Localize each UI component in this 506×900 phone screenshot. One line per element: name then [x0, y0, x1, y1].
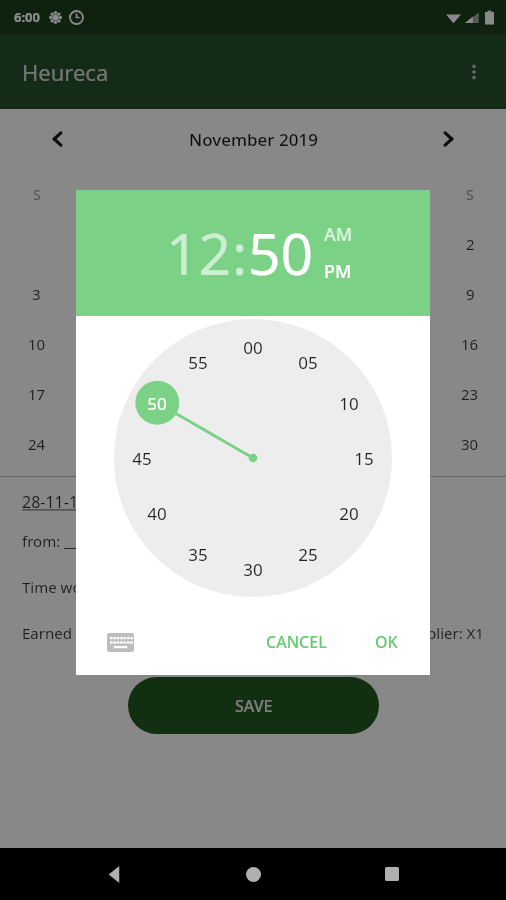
button[interactable]: 12 — [173, 334, 191, 354]
staticText: from: ______ to: ______ — [22, 531, 179, 551]
button[interactable]: 50 — [135, 381, 179, 425]
button[interactable]: 29 — [389, 434, 407, 454]
staticText: S — [466, 185, 474, 204]
button[interactable]: More options — [452, 50, 496, 94]
button[interactable]: 17 — [28, 384, 46, 404]
button[interactable]: 55 — [176, 340, 220, 384]
button[interactable]: 3 — [32, 284, 41, 304]
staticText: 50 — [147, 392, 167, 415]
button[interactable]: Home — [229, 850, 277, 898]
staticText: : — [232, 214, 248, 292]
staticText: 45 — [132, 447, 152, 470]
staticText: November 2019 — [189, 128, 318, 151]
button[interactable]: SAVE — [128, 677, 379, 734]
staticText: 10 — [339, 392, 359, 415]
button[interactable]: 2 — [466, 234, 475, 254]
button[interactable]: 40 — [135, 491, 179, 535]
button[interactable]: Recent apps — [368, 850, 416, 898]
staticText: F — [394, 185, 402, 204]
button[interactable]: Previous month — [40, 121, 76, 157]
button[interactable]: 25 — [286, 532, 330, 576]
button[interactable]: 35 — [176, 532, 220, 576]
button[interactable]: AM — [324, 222, 353, 247]
button[interactable]: 16 — [461, 334, 479, 354]
staticText: S — [33, 185, 41, 204]
staticText: 28-11-19 — [22, 491, 88, 513]
button[interactable]: 14 — [317, 334, 335, 354]
button[interactable]: 30 — [461, 434, 479, 454]
staticText: 15 — [354, 447, 374, 470]
button[interactable]: 15 — [342, 436, 386, 480]
button[interactable]: 20 — [327, 491, 371, 535]
staticText: CANCEL — [266, 631, 327, 653]
staticText: 25 — [298, 543, 318, 566]
staticText: Time worked: — [22, 577, 118, 597]
button[interactable]: Switch to keyboard input — [102, 624, 138, 660]
button[interactable]: 45 — [120, 436, 164, 480]
button[interactable]: 27 — [245, 434, 263, 454]
staticText: W — [247, 185, 261, 204]
button[interactable]: 50 — [248, 214, 314, 292]
button[interactable]: 9 — [466, 284, 475, 304]
button[interactable]: 05 — [286, 340, 330, 384]
staticText: SAVE — [235, 695, 273, 717]
button[interactable]: 30 — [231, 547, 275, 591]
staticText: Heureca — [22, 57, 109, 87]
button[interactable]: 00 — [231, 325, 275, 369]
button[interactable]: OK — [365, 623, 408, 661]
staticText: 40 — [147, 502, 167, 525]
button[interactable]: Next month — [430, 121, 466, 157]
staticText: M — [103, 185, 116, 204]
staticText: 20 — [339, 502, 359, 525]
button[interactable]: Back — [91, 850, 139, 898]
staticText: 05 — [298, 351, 318, 374]
staticText: 30 — [243, 558, 263, 581]
button[interactable]: 13 — [245, 334, 263, 354]
button[interactable]: PM — [324, 259, 352, 284]
staticText: 6:00 — [14, 8, 40, 26]
button[interactable]: 24 — [28, 434, 46, 454]
staticText: T — [178, 185, 186, 204]
button[interactable]: 25 — [101, 434, 119, 454]
staticText: OK — [375, 631, 398, 653]
button[interactable]: CANCEL — [256, 623, 337, 661]
button[interactable]: 12 — [166, 214, 232, 292]
button[interactable]: 23 — [461, 384, 479, 404]
staticText: 35 — [188, 543, 208, 566]
staticText: 00 — [243, 336, 263, 359]
staticText: T — [322, 185, 330, 204]
button[interactable]: 10 — [327, 381, 371, 425]
staticText: 55 — [188, 351, 208, 374]
staticText: Earned today: — [22, 623, 120, 643]
button[interactable]: 19 — [173, 384, 191, 404]
button[interactable]: 10 — [28, 334, 46, 354]
staticText: Multiplier: X1 — [391, 623, 484, 643]
